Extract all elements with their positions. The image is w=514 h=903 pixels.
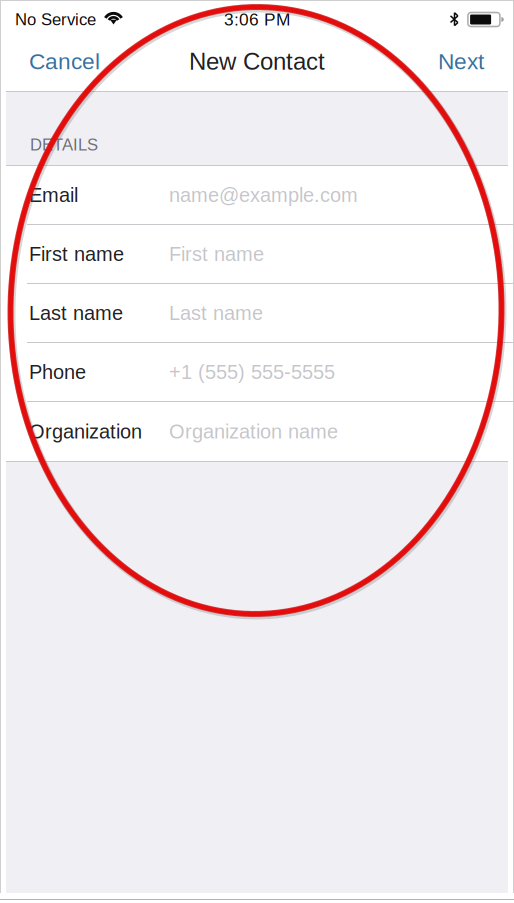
staticText: No Service (15, 10, 96, 29)
button[interactable]: Last name (1, 284, 513, 343)
staticText: Phone (29, 361, 86, 383)
staticText: Next (438, 49, 484, 74)
staticText: DETAILS (30, 135, 98, 154)
staticText: +1 (555) 555-5555 (169, 361, 335, 383)
staticText: First name (29, 243, 124, 265)
staticText: First name (169, 243, 264, 265)
staticText: New Contact (189, 48, 325, 75)
button[interactable]: Cancel (1, 39, 114, 83)
staticText: Organization (29, 420, 142, 443)
button[interactable]: Phone (1, 343, 513, 402)
button[interactable]: First name (1, 225, 513, 284)
staticText: name@example.com (169, 184, 358, 206)
staticText: Organization name (169, 420, 338, 443)
staticText: Last name (29, 302, 123, 324)
button[interactable]: Next (424, 39, 513, 83)
staticText: Email (29, 184, 78, 206)
button[interactable]: Organization (1, 402, 513, 461)
staticText: Last name (169, 302, 263, 324)
button[interactable]: Email (1, 166, 513, 225)
staticText: 3:06 PM (224, 10, 290, 29)
staticText: Cancel (29, 49, 100, 74)
